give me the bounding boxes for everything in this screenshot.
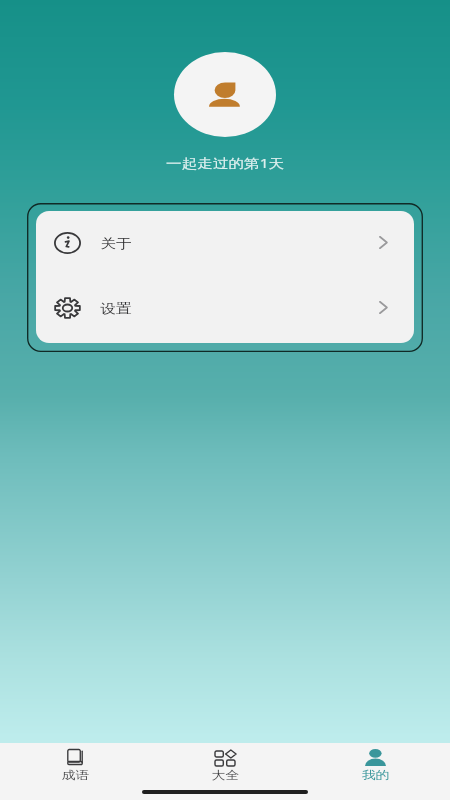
staticText: 一起走过的第1天 bbox=[166, 154, 285, 172]
button[interactable]: Avatar bbox=[174, 52, 276, 137]
button[interactable]: 设置 bbox=[36, 275, 414, 340]
button[interactable]: 成语 bbox=[0, 743, 150, 800]
staticText: 我的 bbox=[362, 768, 389, 782]
button[interactable]: 我的 bbox=[300, 743, 450, 800]
staticText: 关于 bbox=[100, 235, 132, 251]
staticText: 大全 bbox=[212, 768, 239, 782]
staticText: 设置 bbox=[100, 300, 132, 316]
button[interactable]: 大全 bbox=[150, 743, 300, 800]
staticText: 成语 bbox=[62, 768, 89, 782]
button[interactable]: 关于 bbox=[36, 211, 414, 275]
